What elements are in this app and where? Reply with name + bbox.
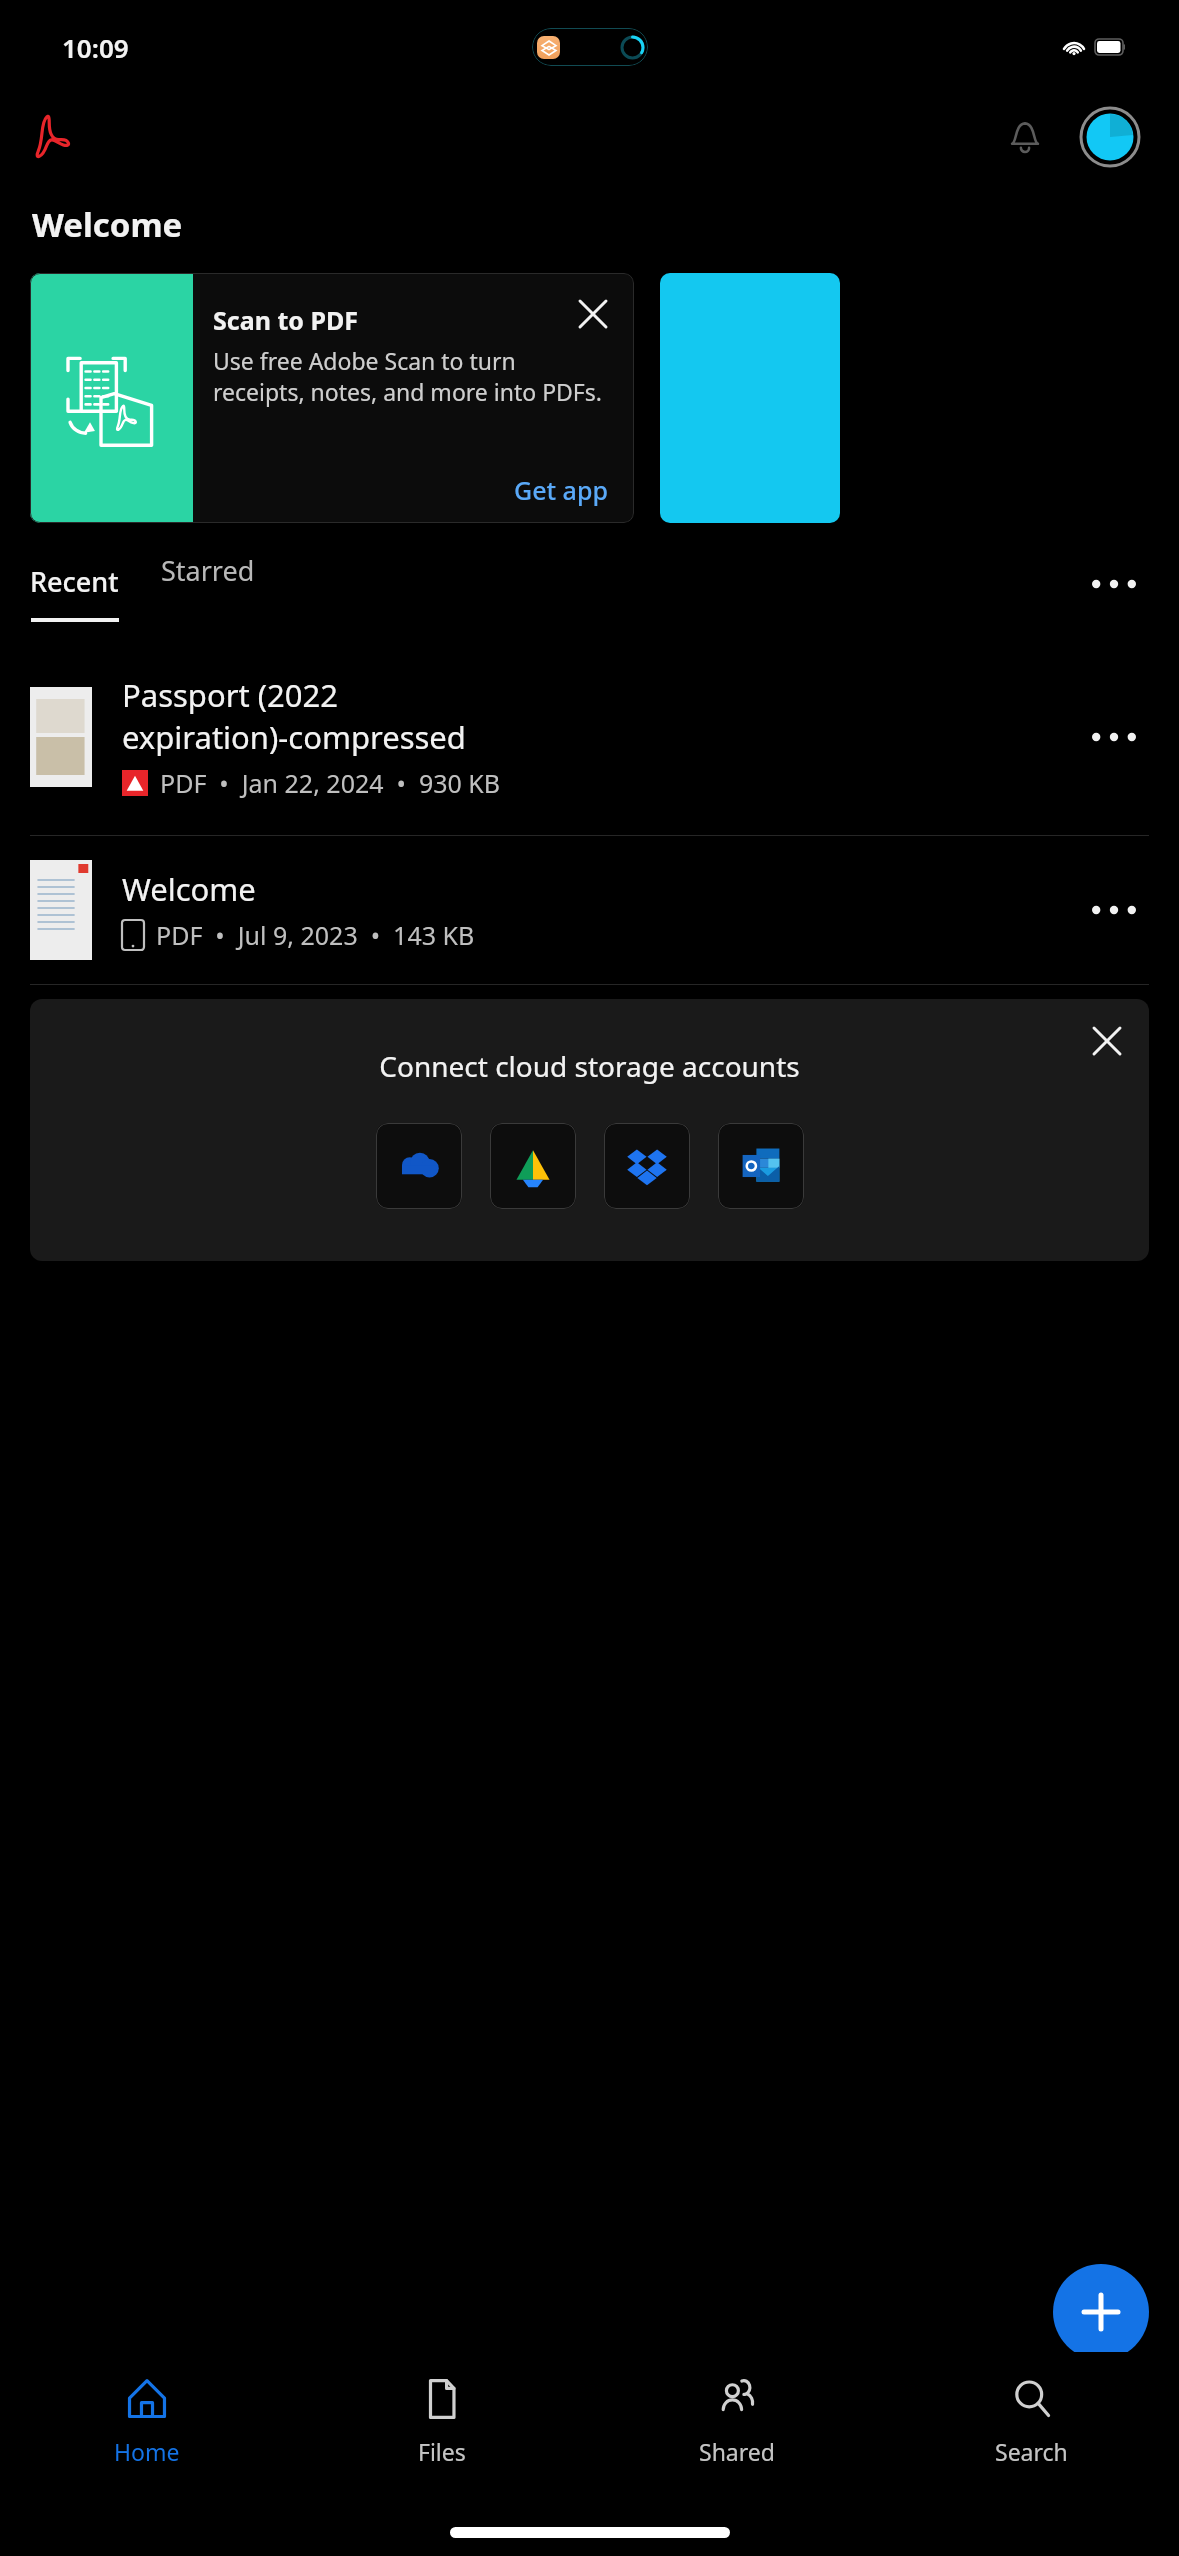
staticText: Shared — [699, 2436, 775, 2467]
button[interactable]: File options — [1079, 875, 1149, 945]
staticText: PDF • Jul 9, 2023 • 143 KB — [156, 918, 475, 952]
button[interactable]: Home — [0, 2352, 294, 2492]
button[interactable]: Google Drive — [490, 1123, 576, 1209]
button[interactable]: Starred — [151, 563, 265, 600]
staticText: Starred — [161, 552, 255, 589]
button[interactable]: Passport (2022 — [0, 639, 1179, 835]
staticText: Recent — [30, 563, 119, 600]
button[interactable]: Recent — [0, 563, 135, 622]
button[interactable]: Create — [1053, 2264, 1149, 2360]
button[interactable]: Scan to PDF — [30, 273, 634, 523]
staticText: Files — [418, 2436, 466, 2467]
button[interactable] — [660, 273, 840, 523]
button[interactable]: Get app — [506, 467, 616, 513]
button[interactable]: Dismiss — [566, 287, 620, 341]
staticText: Search — [995, 2436, 1068, 2467]
staticText: expiration)-compressed — [122, 716, 466, 758]
button[interactable]: Dropbox — [604, 1123, 690, 1209]
staticText: PDF • Jan 22, 2024 • 930 KB — [160, 766, 501, 800]
button[interactable]: File options — [1079, 702, 1149, 772]
button[interactable]: Notifications — [993, 105, 1057, 169]
button[interactable]: More options — [1079, 549, 1149, 619]
staticText: Passport (2022 — [122, 674, 338, 716]
button[interactable]: Welcome — [0, 836, 1179, 984]
button[interactable]: Profile — [1077, 104, 1143, 170]
staticText: Home — [114, 2436, 180, 2467]
button[interactable]: Files — [294, 2352, 589, 2492]
staticText: 10:09 — [62, 30, 129, 65]
button[interactable]: Adobe Acrobat — [20, 106, 82, 168]
button[interactable]: Outlook — [718, 1123, 804, 1209]
button[interactable]: Shared — [589, 2352, 884, 2492]
staticText: Welcome — [122, 868, 256, 910]
button[interactable]: Dismiss — [1077, 1011, 1137, 1071]
staticText: Use free Adobe Scan to turn receipts, no… — [213, 345, 602, 408]
staticText: Scan to PDF — [213, 303, 358, 337]
staticText: Welcome — [32, 202, 183, 247]
button[interactable]: Search — [884, 2352, 1179, 2492]
button[interactable]: OneDrive — [376, 1123, 462, 1209]
staticText: Connect cloud storage accounts — [379, 1047, 800, 1085]
staticText: Get app — [514, 473, 608, 507]
